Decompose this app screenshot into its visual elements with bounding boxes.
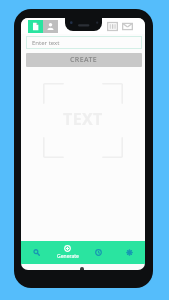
button[interactable]: Settings xyxy=(114,241,145,264)
button[interactable]: Search xyxy=(21,241,52,264)
button[interactable]: CREATE xyxy=(26,53,142,67)
button[interactable]: Generate xyxy=(52,241,83,264)
staticText: CREATE xyxy=(70,55,98,65)
button[interactable]: Documents xyxy=(28,20,43,33)
button[interactable]: Enter text xyxy=(26,36,142,49)
button[interactable]: History xyxy=(83,241,114,264)
staticText: TEXT xyxy=(63,108,103,130)
button[interactable]: Email xyxy=(120,20,135,33)
staticText: Enter text xyxy=(32,39,60,47)
button[interactable]: Barcode xyxy=(105,20,120,33)
button[interactable]: Contacts xyxy=(43,20,58,33)
staticText: Generate xyxy=(57,253,79,260)
